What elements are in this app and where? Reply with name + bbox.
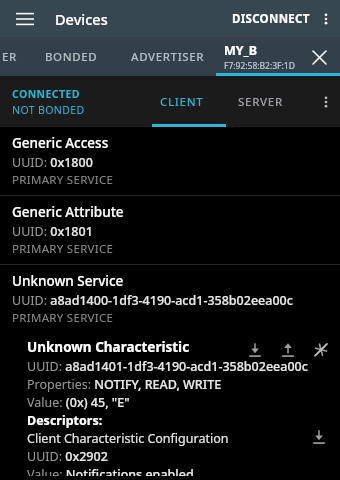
button[interactable]: CLIENT (160, 76, 204, 127)
staticText: PRIMARY SERVICE (12, 310, 114, 326)
staticText: SERVER (238, 94, 283, 110)
staticText: Devices (55, 9, 108, 29)
staticText: Client Characteristic Configuration (27, 430, 229, 447)
button[interactable]: Unknown Characteristic (0, 332, 340, 480)
staticText: Value: (0x) 45, "E" (27, 394, 130, 411)
button[interactable]: Unknown Service (0, 265, 340, 332)
button[interactable]: SERVER (238, 76, 283, 127)
staticText: ER (2, 49, 17, 65)
button[interactable]: Close device tab (304, 42, 334, 72)
staticText: UUID: a8ad1400-1df3-4190-acd1-358b02eea0… (12, 292, 293, 309)
staticText: DISCONNECT (232, 11, 310, 27)
button[interactable]: DISCONNECT (232, 11, 310, 27)
staticText: MY_B (224, 42, 258, 59)
staticText: Unknown Characteristic (27, 338, 190, 356)
staticText: F7:92:58:B2:3F:1D (224, 60, 295, 72)
staticText: UUID: 0x2902 (27, 448, 108, 465)
staticText: Unknown Service (12, 272, 124, 290)
button[interactable]: MY_B (224, 42, 295, 72)
button[interactable]: Generic Access (0, 127, 340, 195)
button[interactable]: Disable notifications (308, 337, 334, 363)
staticText: UUID: 0x1801 (12, 223, 93, 240)
staticText: UUID: a8ad1401-1df3-4190-acd1-358b02eea0… (27, 358, 308, 375)
staticText: Properties: NOTIFY, READ, WRITE (27, 376, 222, 393)
button[interactable]: Generic Attribute (0, 196, 340, 264)
staticText: Descriptors: (27, 412, 103, 429)
staticText: Generic Access (12, 134, 109, 152)
staticText: CONNECTED (12, 87, 80, 101)
staticText: Value: Notifications enabled (27, 466, 194, 476)
staticText: CLIENT (160, 94, 204, 110)
staticText: BONDED (45, 49, 98, 65)
staticText: UUID: 0x1800 (12, 154, 93, 171)
button[interactable]: More options (312, 0, 340, 37)
button[interactable]: More options (312, 76, 340, 127)
button[interactable]: Read descriptor (306, 424, 332, 450)
button[interactable]: ADVERTISER (131, 49, 205, 65)
button[interactable]: Read characteristic (242, 337, 268, 363)
staticText: PRIMARY SERVICE (12, 172, 114, 188)
staticText: PRIMARY SERVICE (12, 241, 114, 257)
button[interactable]: Open navigation menu (8, 2, 42, 36)
button[interactable]: Write characteristic (275, 337, 301, 363)
button[interactable]: BONDED (45, 49, 98, 65)
staticText: ADVERTISER (131, 49, 205, 65)
staticText: Generic Attribute (12, 203, 124, 221)
staticText: NOT BONDED (12, 103, 85, 117)
